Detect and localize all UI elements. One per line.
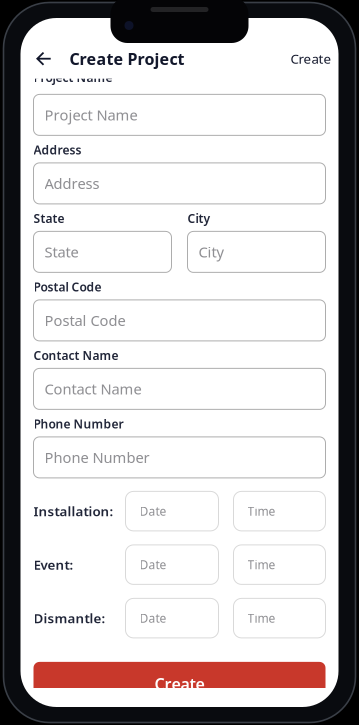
button[interactable]: Time: [233, 545, 325, 584]
staticText: Project Name: [44, 105, 137, 125]
button[interactable]: Project Name: [33, 94, 325, 135]
staticText: Event:: [33, 556, 73, 573]
staticText: Address: [33, 142, 81, 158]
button[interactable]: Back: [36, 43, 62, 75]
button[interactable]: Postal Code: [33, 300, 325, 341]
staticText: Create: [154, 673, 204, 694]
staticText: Date: [139, 610, 166, 626]
staticText: Dismantle:: [33, 609, 105, 627]
button[interactable]: Date: [125, 598, 218, 638]
staticText: State: [44, 242, 78, 262]
staticText: City: [198, 242, 223, 262]
staticText: Time: [247, 557, 275, 573]
staticText: Postal Code: [44, 311, 125, 330]
staticText: Phone Number: [33, 416, 123, 432]
button[interactable]: Date: [125, 491, 218, 531]
staticText: Time: [247, 503, 275, 519]
button[interactable]: Address: [33, 163, 325, 204]
button[interactable]: Contact Name: [33, 368, 325, 409]
button[interactable]: Time: [233, 491, 325, 531]
staticText: State: [33, 210, 64, 226]
button[interactable]: Date: [125, 545, 218, 584]
button[interactable]: Time: [233, 598, 325, 638]
button[interactable]: Create: [290, 44, 331, 74]
staticText: City: [187, 210, 210, 226]
staticText: Create: [290, 50, 331, 67]
staticText: Postal Code: [33, 279, 101, 295]
staticText: Date: [139, 557, 166, 573]
staticText: Date: [139, 503, 166, 519]
staticText: Address: [44, 174, 99, 193]
button[interactable]: City: [187, 231, 325, 272]
staticText: Contact Name: [33, 347, 118, 363]
staticText: Contact Name: [44, 379, 141, 399]
staticText: Create Project: [69, 48, 184, 69]
staticText: Installation:: [33, 502, 113, 520]
button[interactable]: Phone Number: [33, 437, 325, 478]
button[interactable]: Create: [33, 662, 325, 706]
staticText: Time: [247, 610, 275, 626]
staticText: Phone Number: [44, 448, 149, 467]
staticText: Project Name: [33, 69, 112, 85]
button[interactable]: State: [33, 231, 171, 272]
